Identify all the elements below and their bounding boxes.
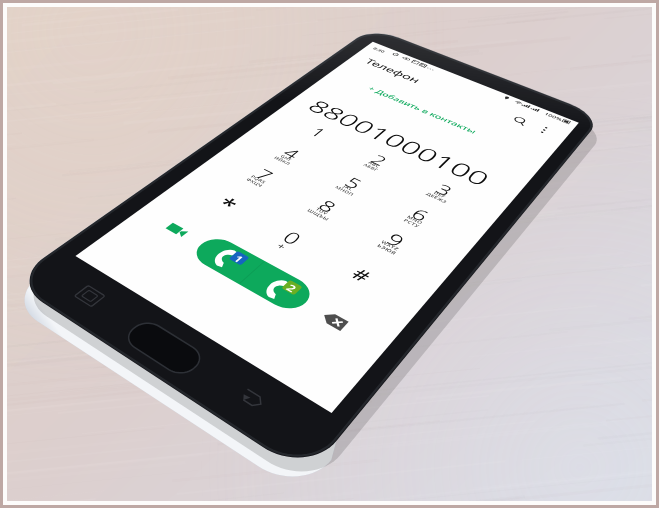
button[interactable]: Photo of a phone showing the dialer xyxy=(0,0,659,508)
